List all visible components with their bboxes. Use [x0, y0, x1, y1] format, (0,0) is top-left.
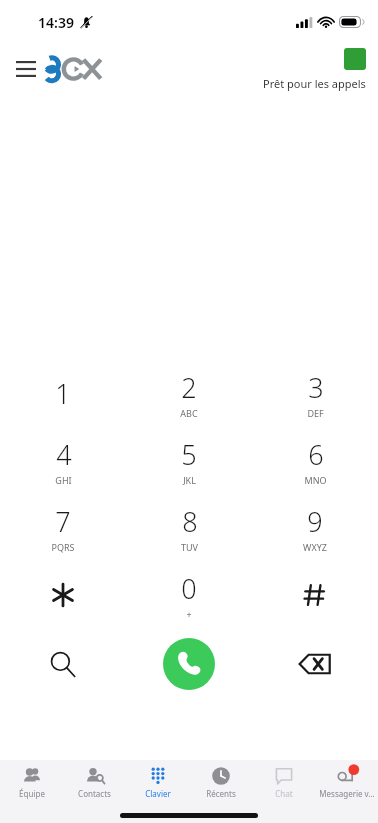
staticText: 3 [308, 369, 324, 406]
button[interactable]: Clavier [126, 766, 189, 810]
staticText: 4 [56, 436, 72, 473]
button[interactable]: Appeler [163, 638, 215, 690]
staticText: Équipe [19, 788, 45, 799]
button[interactable]: Contacts [63, 766, 126, 810]
staticText: PQRS [51, 541, 75, 553]
staticText: 0 [181, 570, 197, 607]
staticText: 9 [307, 503, 323, 540]
staticText: TUV [181, 541, 198, 553]
button[interactable]: 9 [252, 494, 378, 561]
button[interactable]: Menu [10, 50, 113, 88]
button[interactable]: 7 [0, 494, 126, 561]
button[interactable] [0, 561, 126, 628]
staticText: 1 [55, 375, 71, 412]
button[interactable]: 2 [126, 360, 252, 427]
staticText: Prêt pour les appels [263, 76, 366, 91]
staticText: ABC [180, 407, 198, 419]
button[interactable]: Chat [252, 766, 315, 810]
button[interactable]: 4 [0, 427, 126, 494]
button[interactable]: Effacer [252, 628, 378, 700]
button[interactable]: 5 [126, 427, 252, 494]
staticText: DEF [307, 407, 324, 419]
button[interactable]: 8 [126, 494, 252, 561]
button[interactable]: 3 [252, 360, 378, 427]
staticText: Clavier [145, 788, 171, 799]
button[interactable]: Rechercher [0, 628, 126, 700]
button[interactable]: 1 [0, 360, 126, 427]
staticText: WXYZ [303, 541, 327, 553]
button[interactable] [252, 561, 378, 628]
staticText: + [186, 608, 192, 620]
staticText: 2 [181, 369, 197, 406]
button[interactable]: Récents [189, 766, 252, 810]
staticText: JKL [183, 474, 196, 486]
staticText: Contacts [78, 788, 111, 799]
staticText: 8 [182, 503, 198, 540]
button[interactable]: 0 [126, 561, 252, 628]
button[interactable]: 6 [252, 427, 378, 494]
staticText: 5 [181, 436, 197, 473]
button[interactable]: Statut de présence [344, 48, 366, 70]
staticText: MNO [304, 474, 327, 486]
staticText: 6 [308, 436, 324, 473]
staticText: GHI [55, 474, 72, 486]
button[interactable]: Équipe [0, 766, 63, 810]
staticText: 7 [55, 503, 71, 540]
staticText: 14:39 [38, 13, 74, 32]
staticText: Récents [206, 788, 236, 799]
button[interactable]: Messagerie v… [315, 766, 378, 810]
staticText: Chat [275, 788, 293, 799]
staticText: Messagerie v… [319, 788, 375, 799]
